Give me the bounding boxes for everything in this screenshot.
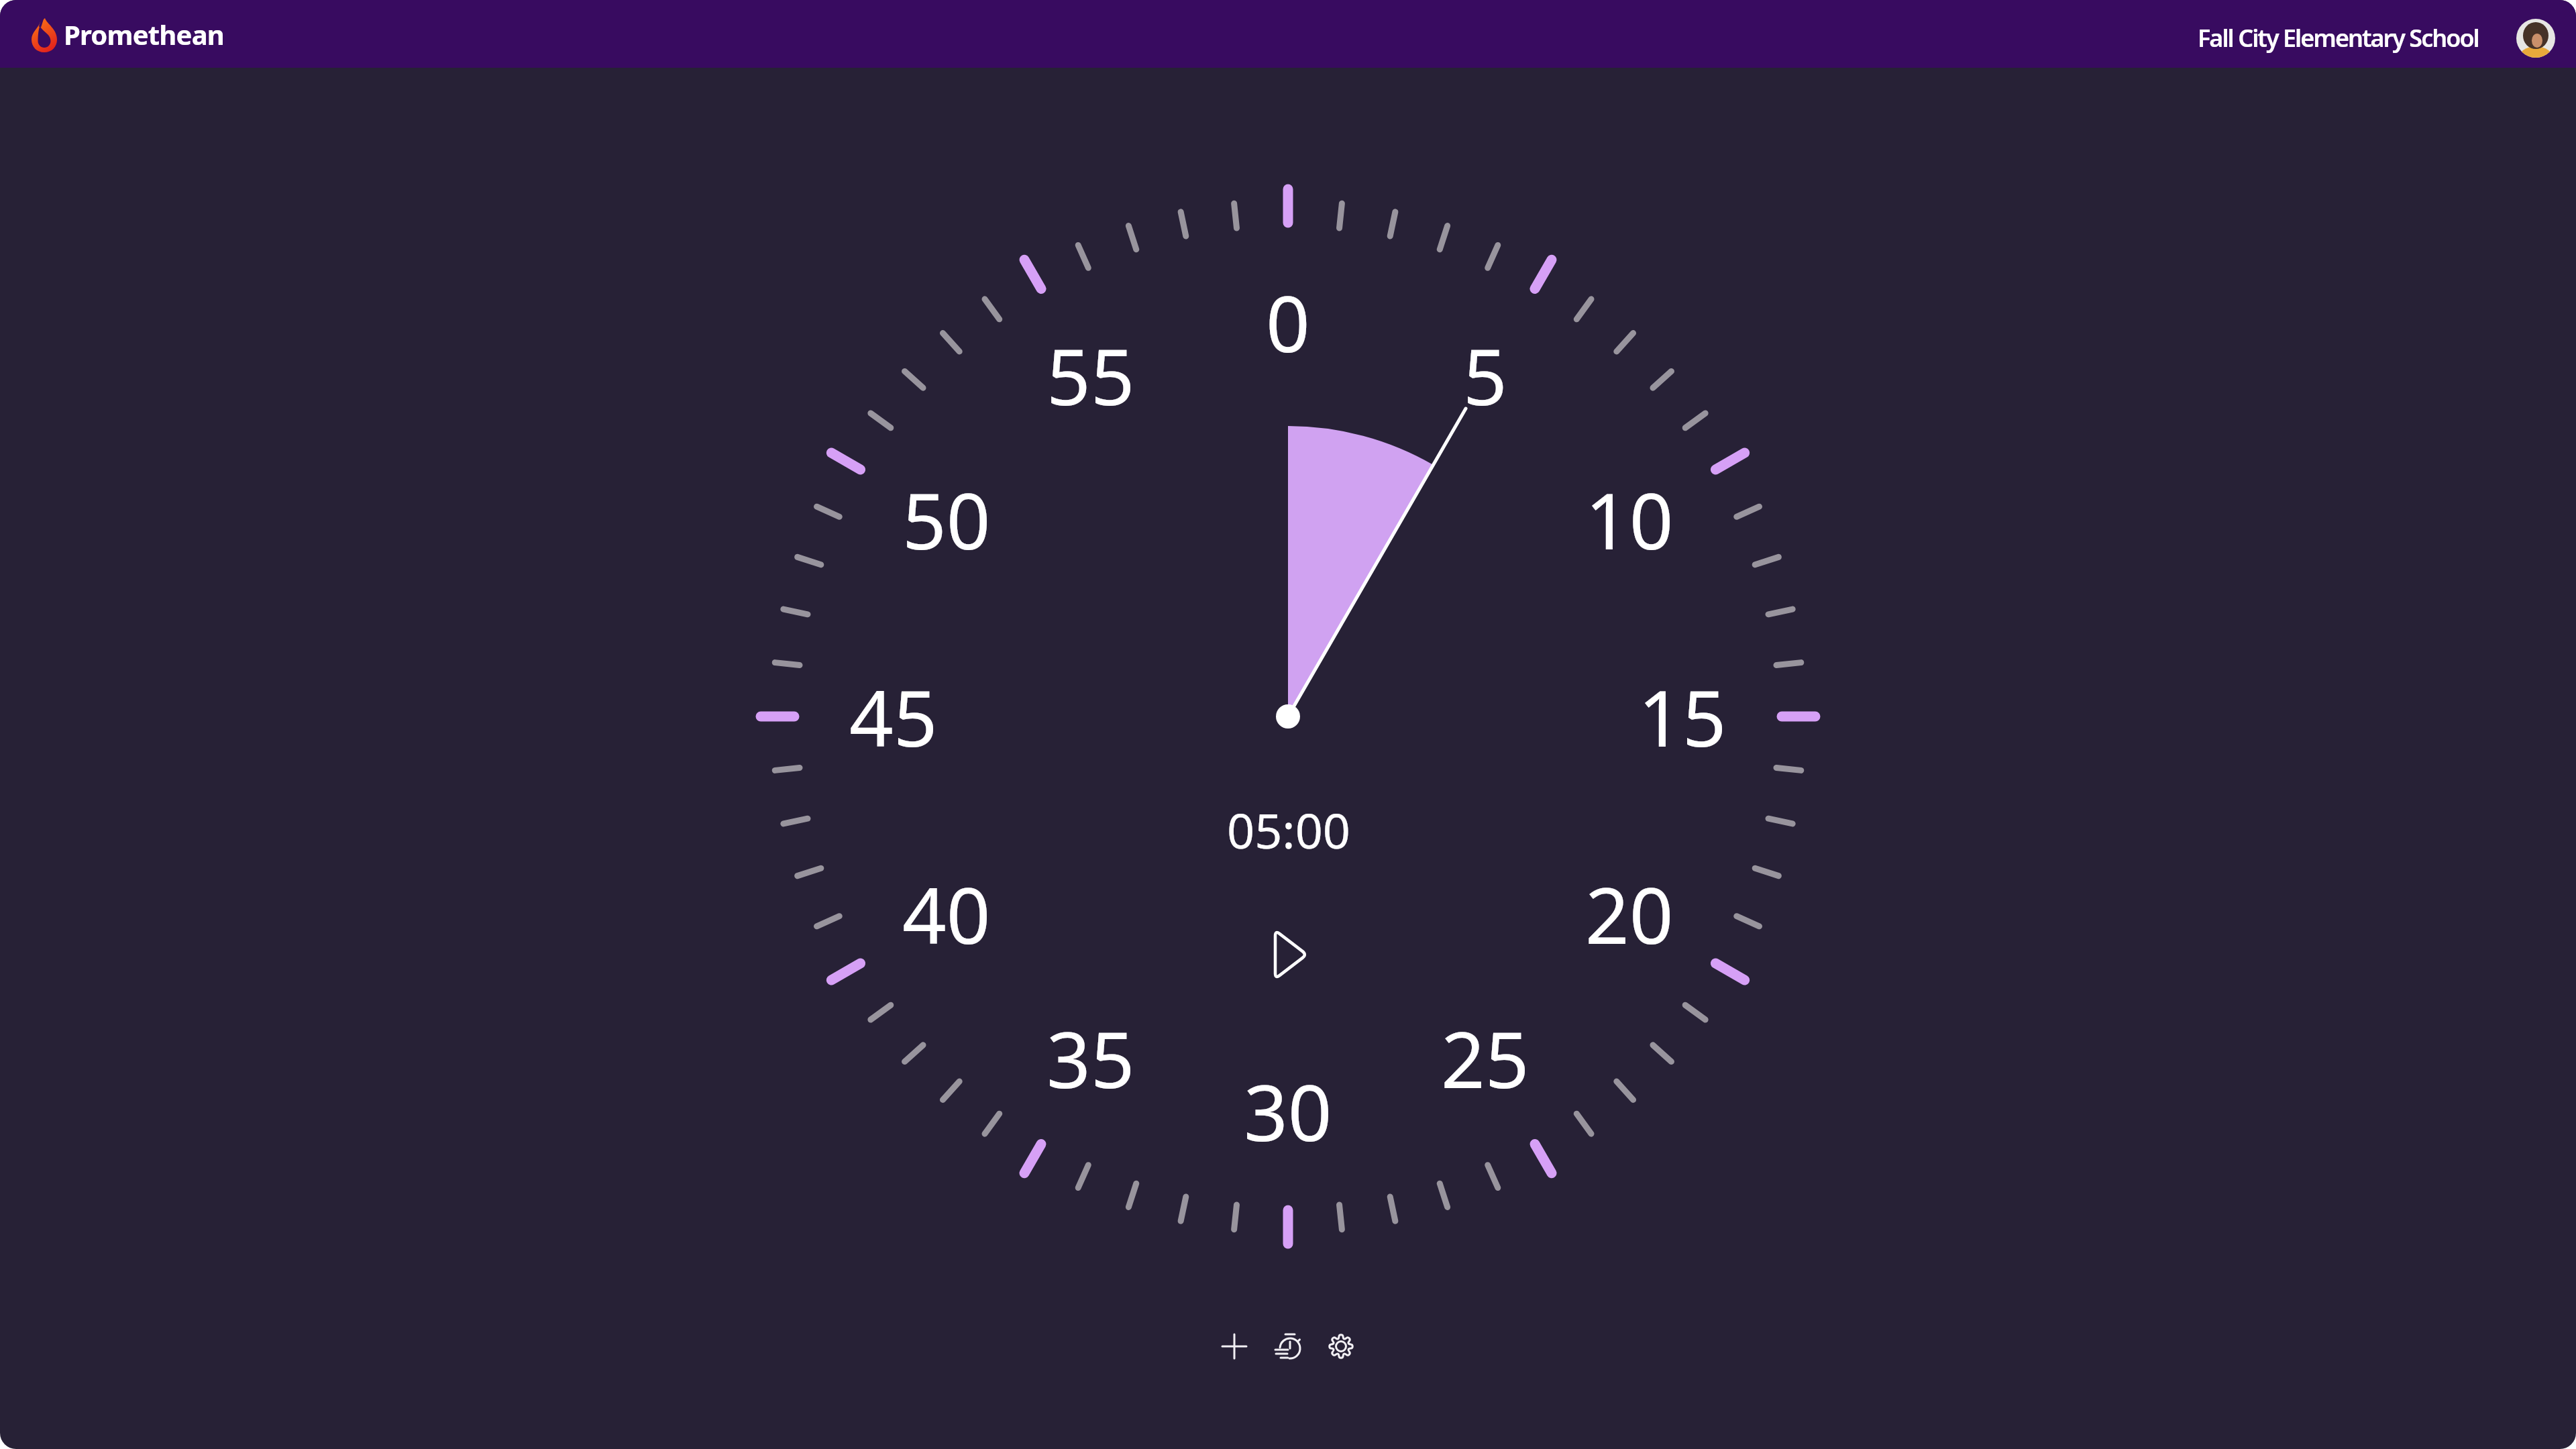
staticText: 55: [1046, 323, 1135, 428]
button[interactable]: [1317, 1322, 1365, 1371]
staticText: 5: [1463, 323, 1507, 428]
staticText: 10: [1585, 467, 1674, 572]
staticText: Fall City Elementary School: [2198, 21, 2479, 54]
staticText: 20: [1585, 861, 1674, 967]
staticText: 25: [1441, 1006, 1529, 1111]
button[interactable]: [1254, 918, 1328, 991]
staticText: 30: [1244, 1059, 1332, 1164]
staticText: 45: [849, 664, 938, 769]
staticText: 15: [1638, 664, 1727, 769]
button[interactable]: [1265, 1322, 1313, 1371]
staticText: 0: [1266, 270, 1310, 375]
staticText: 50: [902, 467, 991, 572]
staticText: 40: [902, 861, 991, 967]
staticText: 05:00: [1227, 797, 1351, 863]
staticText: 35: [1046, 1006, 1135, 1111]
staticText: Promethean: [64, 16, 224, 52]
button[interactable]: [2516, 18, 2556, 58]
button[interactable]: [1210, 1322, 1258, 1371]
